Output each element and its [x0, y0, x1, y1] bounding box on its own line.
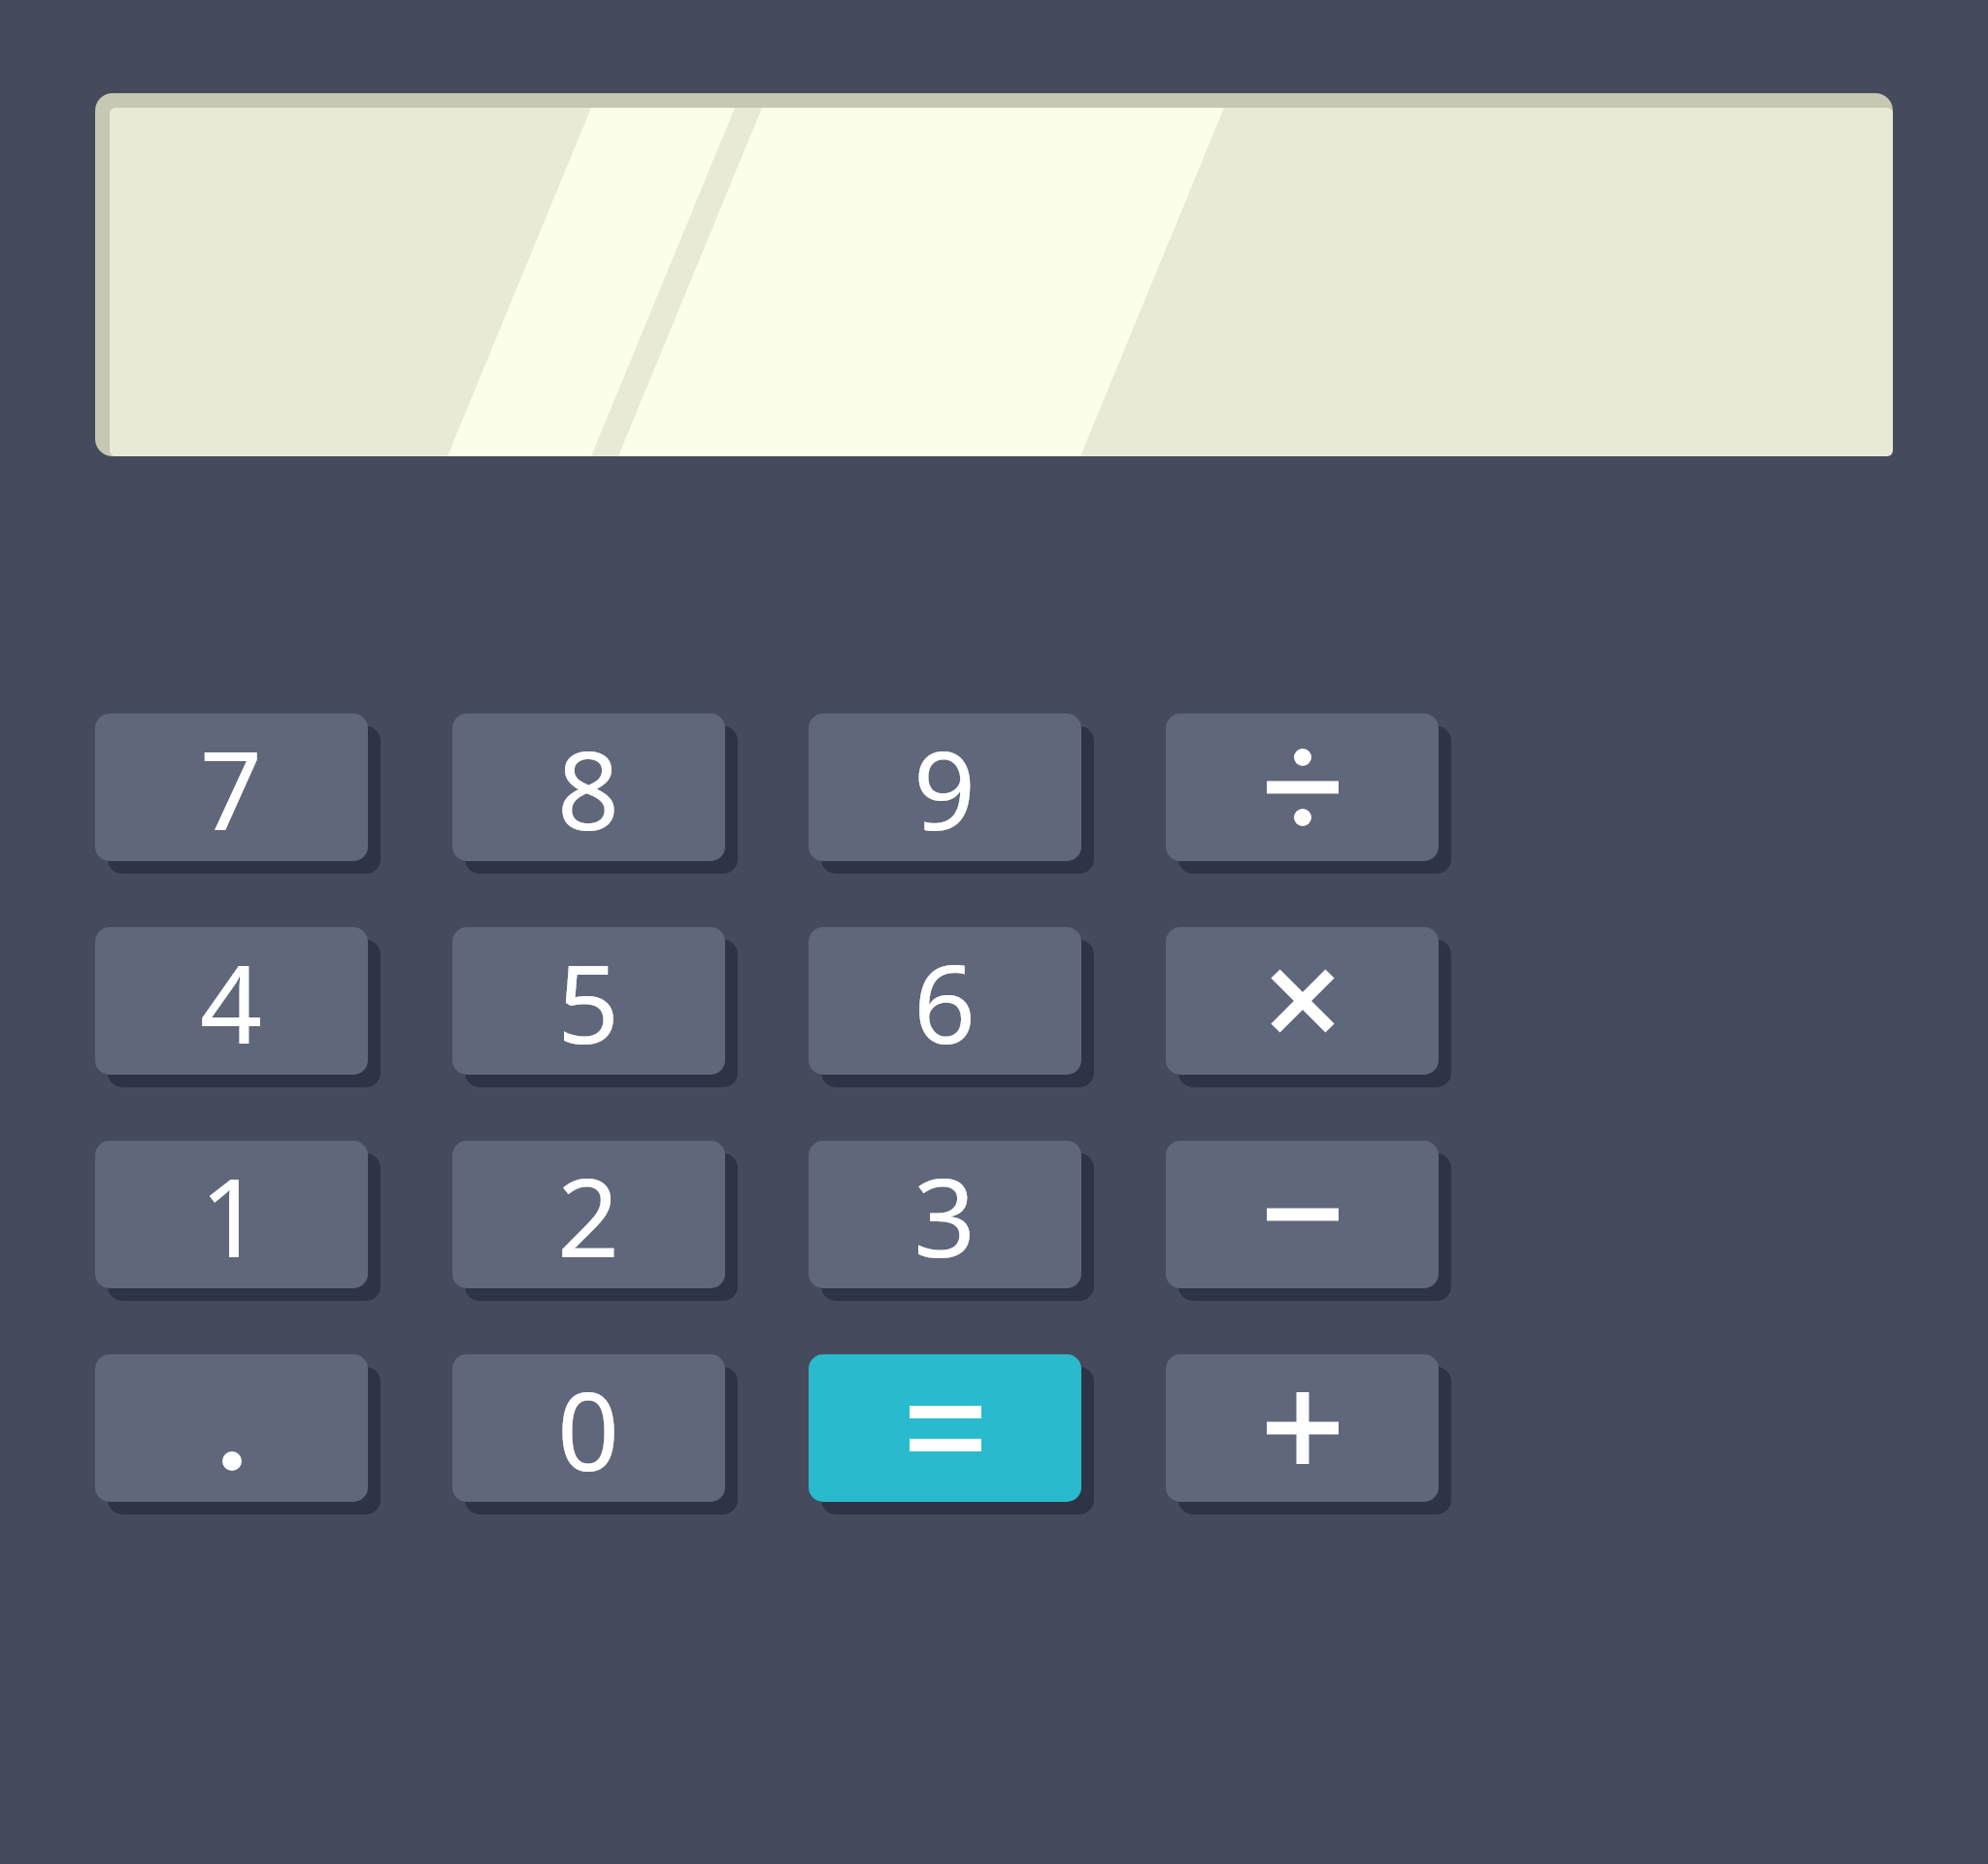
- staticText: 6: [913, 927, 977, 1075]
- button[interactable]: 8: [452, 714, 725, 861]
- staticText: 9: [913, 714, 977, 861]
- button[interactable]: Equals: [809, 1354, 1081, 1502]
- staticText: 1: [200, 1141, 263, 1288]
- button[interactable]: Calculator display: [110, 108, 1893, 456]
- button[interactable]: Add: [1166, 1354, 1439, 1502]
- staticText: 7: [200, 714, 263, 861]
- button[interactable]: 1: [95, 1141, 368, 1288]
- staticText: 8: [557, 714, 620, 861]
- staticText: 0: [557, 1354, 620, 1502]
- button[interactable]: Divide: [1166, 714, 1439, 861]
- button[interactable]: 7: [95, 714, 368, 861]
- button[interactable]: Multiply: [1166, 927, 1439, 1075]
- button[interactable]: 5: [452, 927, 725, 1075]
- staticText: 3: [913, 1141, 977, 1288]
- button[interactable]: 0: [452, 1354, 725, 1502]
- button[interactable]: 2: [452, 1141, 725, 1288]
- button[interactable]: 4: [95, 927, 368, 1075]
- button[interactable]: 3: [809, 1141, 1081, 1288]
- button[interactable]: 9: [809, 714, 1081, 861]
- button[interactable]: Subtract: [1166, 1141, 1439, 1288]
- staticText: 4: [200, 927, 263, 1075]
- button[interactable]: 6: [809, 927, 1081, 1075]
- staticText: 5: [557, 927, 620, 1075]
- staticText: 2: [557, 1141, 620, 1288]
- button[interactable]: Decimal point: [95, 1354, 368, 1502]
